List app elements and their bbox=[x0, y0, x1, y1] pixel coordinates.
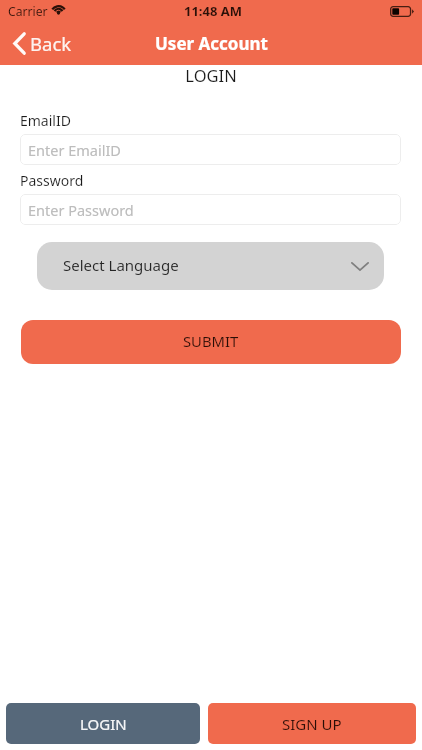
staticText: LOGIN bbox=[0, 64, 422, 86]
staticText: EmailID bbox=[20, 111, 71, 130]
staticText: 11:48 AM bbox=[184, 2, 243, 20]
staticText: Back bbox=[30, 31, 72, 56]
staticText: LOGIN bbox=[80, 714, 127, 734]
staticText: Password bbox=[20, 171, 84, 190]
staticText: Select Language bbox=[63, 255, 179, 275]
button[interactable]: Enter Password bbox=[20, 194, 401, 225]
button[interactable]: LOGIN bbox=[6, 703, 200, 744]
staticText: Enter Password bbox=[28, 200, 134, 220]
button[interactable]: Enter EmailID bbox=[20, 134, 401, 165]
staticText: User Account bbox=[155, 32, 268, 55]
button[interactable]: SIGN UP bbox=[208, 703, 416, 744]
button[interactable]: Select Language bbox=[37, 242, 384, 290]
staticText: Enter EmailID bbox=[28, 140, 121, 160]
staticText: SUBMIT bbox=[183, 331, 239, 351]
other: Back bbox=[13, 32, 26, 55]
button[interactable]: SUBMIT bbox=[21, 320, 401, 364]
button[interactable]: Back bbox=[0, 26, 82, 61]
staticText: SIGN UP bbox=[282, 714, 342, 734]
staticText: Carrier bbox=[8, 3, 48, 20]
